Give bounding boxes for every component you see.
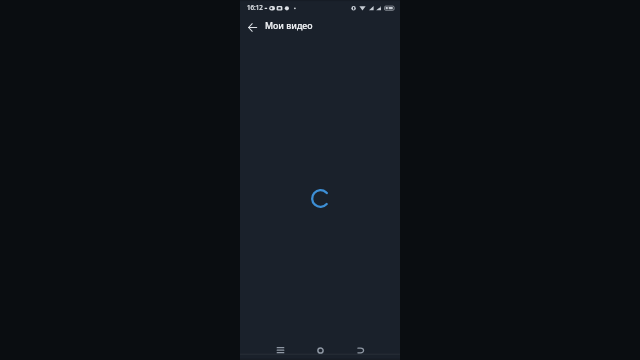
staticText: Мои видео <box>265 20 313 32</box>
button[interactable]: Back <box>348 338 372 360</box>
staticText: 16:12 <box>247 3 263 11</box>
button[interactable]: Back <box>242 17 262 37</box>
button[interactable]: Recent apps <box>268 338 292 360</box>
button[interactable]: Home <box>308 338 332 360</box>
